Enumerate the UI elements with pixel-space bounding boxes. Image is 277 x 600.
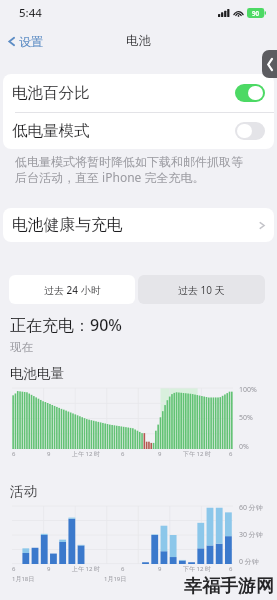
- button[interactable]: 过去 10 天: [138, 275, 265, 304]
- staticText: 60 分钟: [239, 503, 263, 513]
- button[interactable]: 电池百分比: [3, 74, 274, 112]
- staticText: 过去 24 小时: [44, 283, 101, 297]
- button[interactable]: 设置: [5, 34, 43, 49]
- staticText: 0 分钟: [239, 557, 259, 567]
- staticText: 9: [47, 450, 51, 458]
- staticText: 下午 12 时: [183, 565, 211, 573]
- staticText: 6: [229, 450, 233, 458]
- staticText: 1月18日: [12, 575, 35, 583]
- staticText: 50%: [239, 413, 253, 423]
- button[interactable]: Back: [262, 50, 277, 78]
- staticText: 0%: [239, 442, 249, 452]
- staticText: 30 分钟: [239, 530, 263, 540]
- staticText: 9: [158, 450, 162, 458]
- button[interactable]: 低电量模式: [3, 113, 274, 149]
- staticText: 后台活动，直至 iPhone 完全充电。: [15, 169, 205, 185]
- staticText: 电池: [126, 33, 151, 49]
- staticText: 6: [12, 450, 16, 458]
- staticText: 100%: [239, 385, 257, 395]
- button[interactable]: 过去 24 小时: [9, 275, 135, 304]
- staticText: 1月19日: [104, 575, 127, 583]
- staticText: 电池百分比: [12, 83, 90, 103]
- staticText: 低电量模式将暂时降低如下载和邮件抓取等: [15, 154, 243, 169]
- staticText: 9: [158, 565, 162, 573]
- staticText: 下午 12 时: [183, 450, 211, 458]
- staticText: 5:44: [19, 5, 42, 21]
- staticText: 活动: [10, 483, 37, 500]
- staticText: 上午 12 时: [72, 450, 100, 458]
- staticText: 正在充电：90%: [10, 314, 122, 336]
- staticText: 6: [12, 565, 16, 573]
- staticText: 设置: [19, 34, 43, 49]
- staticText: 6: [121, 565, 125, 573]
- staticText: 电池健康与充电: [12, 215, 123, 235]
- staticText: 低电量模式: [12, 121, 90, 141]
- button[interactable]: 电池健康与充电: [3, 208, 274, 242]
- staticText: 90: [252, 9, 260, 17]
- staticText: 6: [229, 565, 233, 573]
- staticText: 9: [47, 565, 51, 573]
- staticText: 电池电量: [10, 365, 64, 382]
- staticText: 现在: [10, 340, 33, 354]
- staticText: 上午 12 时: [72, 565, 100, 573]
- staticText: 6: [121, 450, 125, 458]
- staticText: 过去 10 天: [178, 283, 225, 297]
- staticText: 幸福手游网: [184, 575, 274, 598]
